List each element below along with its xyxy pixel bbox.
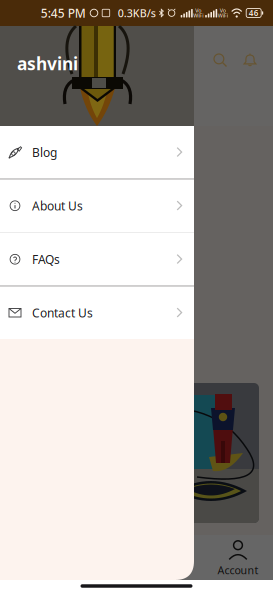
staticText: 0.3KB/s [118,6,156,20]
staticText: 46 [249,8,259,18]
button[interactable]: Contact Us [0,286,194,339]
button[interactable]: Notifications [240,50,260,70]
staticText: Blog [32,144,57,160]
button[interactable]: Search [210,50,230,70]
staticText: 5:45 PM [41,5,86,21]
staticText: Vo [195,7,201,14]
staticText: WiFi [218,12,228,19]
button[interactable]: FAQs [0,233,194,285]
staticText: Contact Us [32,305,93,321]
button[interactable]: Account [204,537,272,580]
staticText: Account [217,563,258,577]
staticText: About Us [32,198,83,214]
staticText: ashvini [17,52,78,75]
staticText: FAQs [32,251,60,267]
button[interactable]: Blog [0,126,194,178]
button[interactable]: About Us [0,179,194,232]
staticText: WiFi [193,12,203,19]
staticText: Vo [220,7,226,14]
